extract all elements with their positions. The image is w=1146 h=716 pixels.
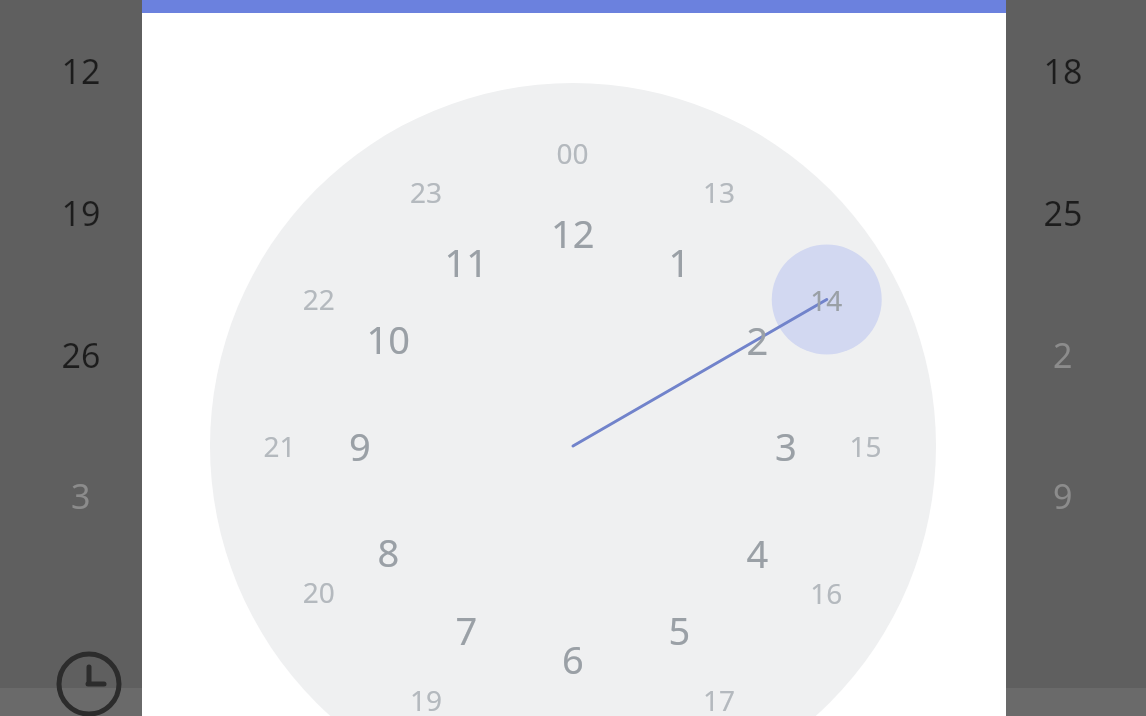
button[interactable]: Switch to clock input	[0, 0, 1146, 716]
button[interactable]: Select hour	[0, 0, 1146, 716]
